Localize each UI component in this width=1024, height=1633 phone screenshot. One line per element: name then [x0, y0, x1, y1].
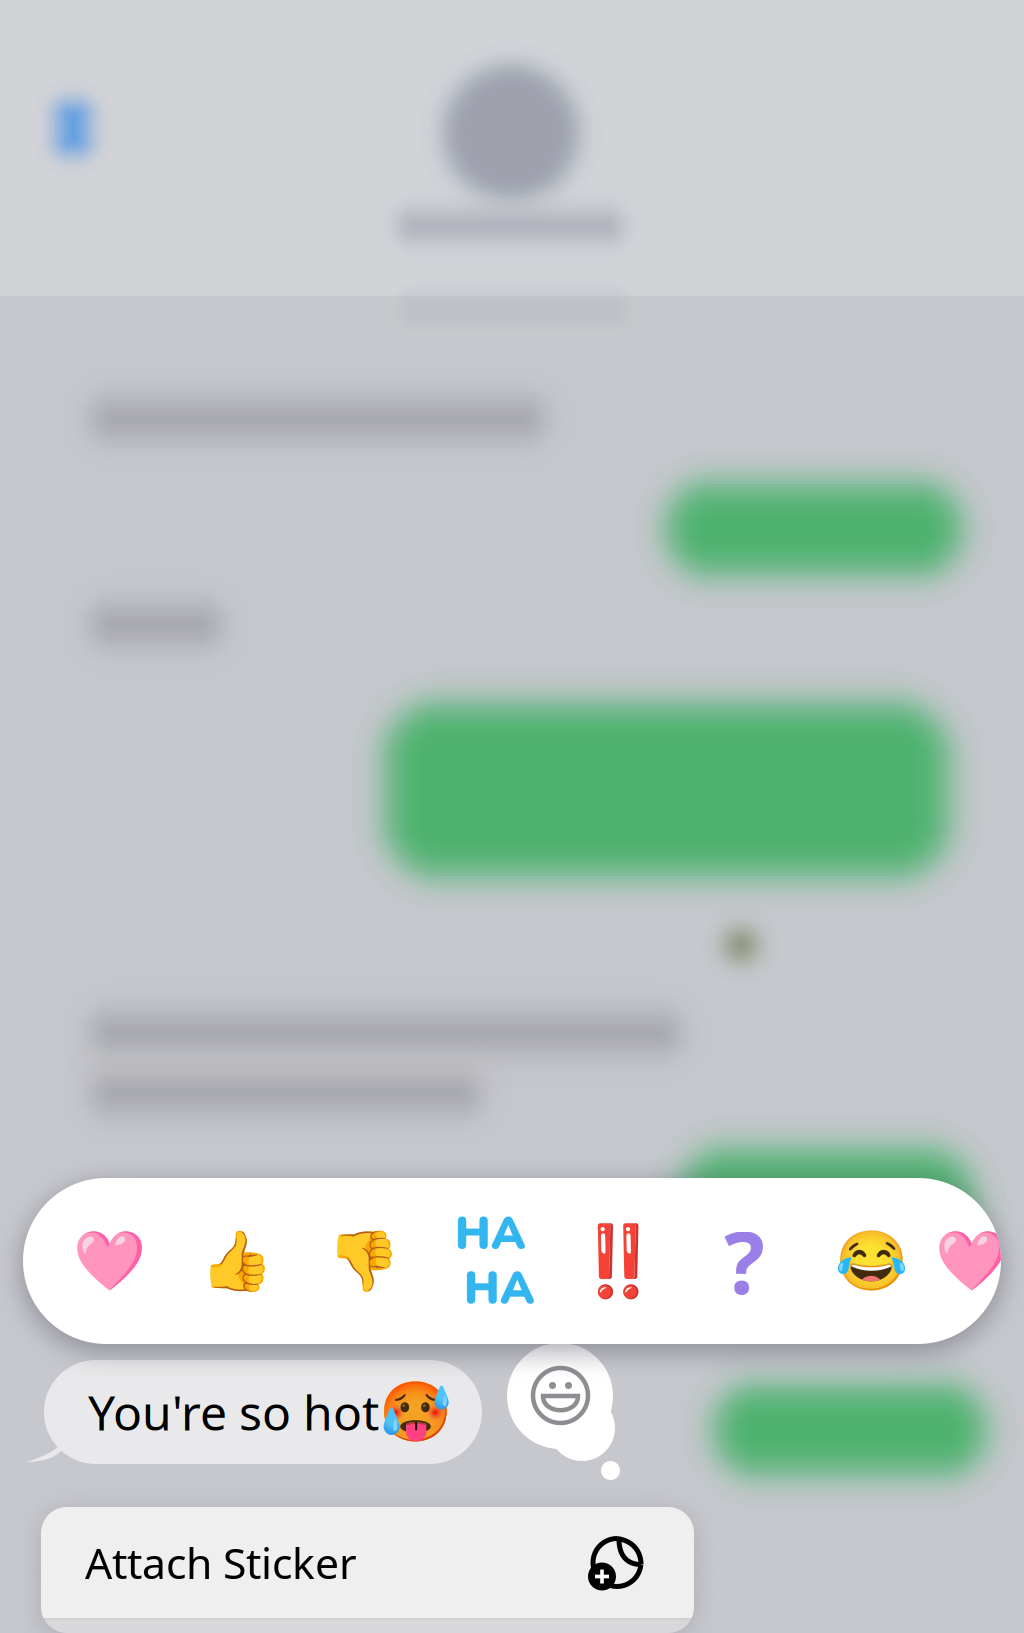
staticText: 👍: [200, 1227, 273, 1294]
button[interactable]: Thumbs up: [173, 1178, 300, 1344]
staticText: HA: [464, 1257, 535, 1319]
button[interactable]: Haha: [427, 1178, 554, 1344]
staticText: 🩷: [73, 1227, 146, 1294]
button[interactable]: Thumbs down: [300, 1178, 427, 1344]
button[interactable]: More reactions: [935, 1178, 1024, 1344]
staticText: 🥵: [379, 1378, 452, 1445]
staticText: HA: [455, 1203, 526, 1264]
button[interactable]: Exclamation: [554, 1178, 681, 1344]
button[interactable]: Attach Sticker: [41, 1507, 694, 1618]
staticText: ?: [724, 1204, 765, 1318]
staticText: 👎: [327, 1227, 400, 1294]
staticText: You're so hot: [88, 1380, 379, 1444]
staticText: ‼️: [574, 1221, 660, 1301]
button[interactable]: Love: [46, 1178, 173, 1344]
staticText: 😂: [835, 1227, 908, 1294]
staticText: Attach Sticker: [85, 1534, 357, 1591]
button[interactable]: Question: [681, 1178, 808, 1344]
staticText: 🩷: [935, 1227, 1008, 1294]
button[interactable]: Laugh: [808, 1178, 935, 1344]
